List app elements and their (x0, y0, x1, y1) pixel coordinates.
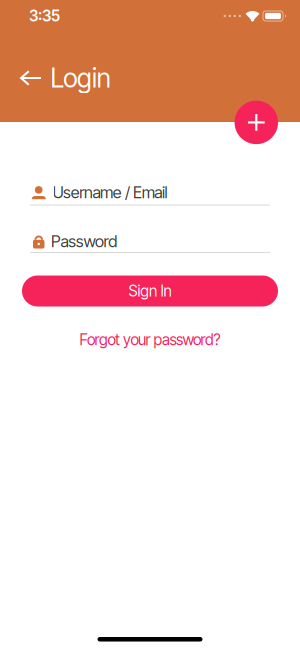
button[interactable]: Password (30, 234, 270, 253)
staticText: Forgot your password? (79, 330, 220, 349)
button[interactable]: Back (20, 70, 42, 86)
staticText: Username / Email (52, 182, 167, 202)
button[interactable]: Sign In (22, 275, 278, 306)
staticText: Login (50, 62, 111, 94)
button[interactable]: Username / Email (30, 185, 270, 205)
staticText: 3:35 (29, 7, 60, 25)
button[interactable]: Add account (235, 101, 278, 144)
staticText: Sign In (129, 282, 171, 300)
button[interactable]: Forgot your password? (79, 330, 220, 349)
staticText: Password (51, 231, 117, 251)
